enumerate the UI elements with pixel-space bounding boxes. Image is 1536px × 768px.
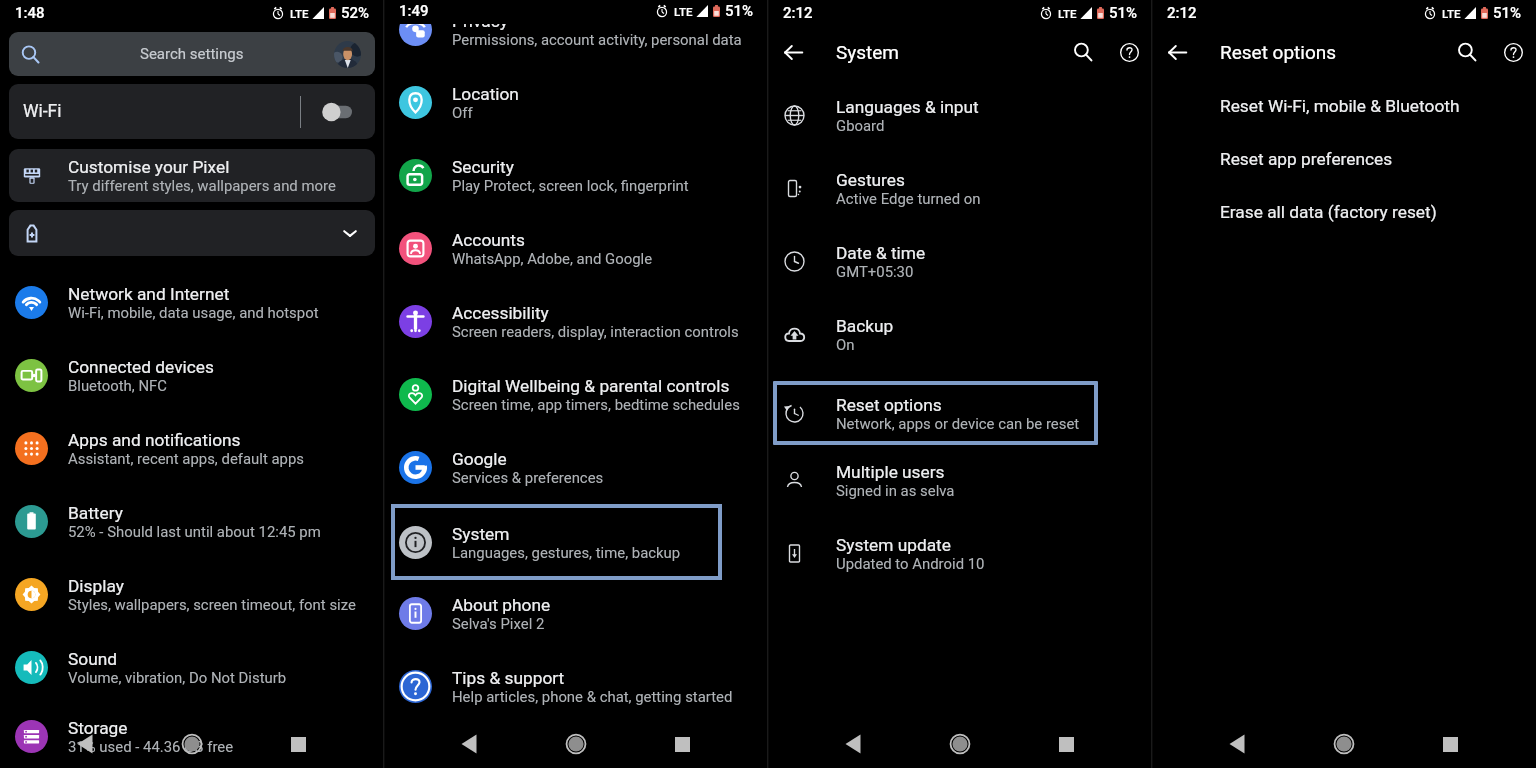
staticText: Bluetooth, NFC xyxy=(68,377,167,394)
staticText: Volume, vibration, Do Not Disturb xyxy=(68,669,287,686)
button[interactable]: Home xyxy=(556,724,596,764)
button[interactable]: Apps and notifications xyxy=(0,412,384,485)
staticText: Digital Wellbeing & parental controls xyxy=(452,376,730,396)
button[interactable]: Erase all data (factory reset) xyxy=(1152,185,1536,238)
staticText: About phone xyxy=(452,595,551,615)
button[interactable]: Date & time xyxy=(768,225,1152,298)
staticText: Gboard xyxy=(836,117,885,134)
staticText: Active Edge turned on xyxy=(836,190,981,207)
button[interactable]: Battery xyxy=(0,485,384,558)
staticText: Battery xyxy=(68,503,123,523)
button[interactable]: Home xyxy=(940,724,980,764)
button[interactable]: Digital Wellbeing & parental controls xyxy=(384,358,768,431)
button[interactable]: Back xyxy=(1217,724,1257,764)
button[interactable]: Network and Internet xyxy=(0,266,384,339)
staticText: LTE xyxy=(290,7,309,20)
button[interactable]: Gestures xyxy=(768,152,1152,225)
staticText: Storage xyxy=(68,718,128,738)
button[interactable]: Customise your Pixel xyxy=(9,149,375,202)
button[interactable]: About phone xyxy=(384,577,768,650)
button[interactable]: Recent apps xyxy=(662,724,702,764)
staticText: 31% used - 44.36 GB free xyxy=(68,738,234,755)
button[interactable]: Back xyxy=(65,724,105,764)
button[interactable]: Connected devices xyxy=(0,339,384,412)
button[interactable]: Help xyxy=(1494,33,1532,71)
staticText: Reset app preferences xyxy=(1220,149,1393,169)
staticText: LTE xyxy=(674,5,693,18)
button[interactable]: Accounts xyxy=(384,212,768,285)
button[interactable]: Recent apps xyxy=(1430,724,1470,764)
staticText: Display xyxy=(68,576,124,596)
staticText: LTE xyxy=(1058,7,1077,20)
staticText: Accessibility xyxy=(452,303,549,323)
staticText: Services & preferences xyxy=(452,469,604,486)
button[interactable]: Search xyxy=(1448,33,1486,71)
staticText: 2:12 xyxy=(783,4,813,22)
staticText: On xyxy=(836,336,855,353)
button[interactable]: Reset options xyxy=(773,381,1098,445)
staticText: 51% xyxy=(725,2,754,20)
button[interactable]: Recent apps xyxy=(1046,724,1086,764)
staticText: 52% xyxy=(341,4,370,22)
button[interactable]: Tips & support xyxy=(384,650,768,723)
staticText: Selva's Pixel 2 xyxy=(452,615,545,632)
button[interactable]: System update xyxy=(768,517,1152,590)
button[interactable]: Wi-Fi xyxy=(9,84,375,139)
button[interactable]: Back xyxy=(777,36,809,68)
button[interactable]: Search settings xyxy=(9,32,375,76)
staticText: Backup xyxy=(836,316,894,336)
button[interactable]: Sound xyxy=(0,631,384,704)
staticText: 2:12 xyxy=(1167,4,1197,22)
staticText: Connected devices xyxy=(68,357,214,377)
staticText: Erase all data (factory reset) xyxy=(1220,202,1437,222)
button[interactable]: Home xyxy=(1324,724,1364,764)
button[interactable]: Security xyxy=(384,139,768,212)
staticText: 51% xyxy=(1109,4,1138,22)
button[interactable]: Backup xyxy=(768,298,1152,371)
staticText: 1:49 xyxy=(399,2,429,20)
staticText: LTE xyxy=(1442,7,1461,20)
staticText: Sound xyxy=(68,649,117,669)
button[interactable]: Google xyxy=(384,431,768,504)
button[interactable]: Home xyxy=(172,724,212,764)
staticText: 51% xyxy=(1493,4,1522,22)
button[interactable]: Privacy xyxy=(384,0,768,66)
staticText: Languages, gestures, time, backup xyxy=(452,544,681,561)
button[interactable]: Back xyxy=(833,724,873,764)
button[interactable]: Back xyxy=(1161,36,1193,68)
staticText: Try different styles, wallpapers and mor… xyxy=(68,177,336,194)
staticText: Off xyxy=(452,104,473,121)
staticText: WhatsApp, Adobe, and Google xyxy=(452,250,653,267)
button[interactable]: Search xyxy=(1064,33,1102,71)
staticText: Location xyxy=(452,84,519,104)
staticText: System xyxy=(452,524,510,544)
button[interactable]: Storage xyxy=(0,704,384,768)
staticText: Reset options xyxy=(1220,41,1337,63)
button[interactable]: Back xyxy=(449,724,489,764)
button[interactable]: Recent apps xyxy=(278,724,318,764)
button[interactable] xyxy=(9,210,375,256)
staticText: Search settings xyxy=(140,45,244,63)
staticText: Google xyxy=(452,449,507,469)
staticText: Help articles, phone & chat, getting sta… xyxy=(452,688,733,705)
button[interactable]: Display xyxy=(0,558,384,631)
staticText: Play Protect, screen lock, fingerprint xyxy=(452,177,689,194)
staticText: Reset options xyxy=(836,395,942,415)
button[interactable]: System xyxy=(391,504,722,580)
button[interactable]: Help xyxy=(1110,33,1148,71)
button[interactable]: Location xyxy=(384,66,768,139)
staticText: Languages & input xyxy=(836,97,979,117)
staticText: System xyxy=(836,41,900,63)
staticText: Accounts xyxy=(452,230,525,250)
staticText: Security xyxy=(452,157,514,177)
button[interactable]: Languages & input xyxy=(768,79,1152,152)
staticText: GMT+05:30 xyxy=(836,263,914,280)
button[interactable]: Multiple users xyxy=(768,444,1152,517)
staticText: Permissions, account activity, personal … xyxy=(452,31,742,48)
staticText: Privacy xyxy=(452,11,508,31)
button[interactable]: Reset Wi-Fi, mobile & Bluetooth xyxy=(1152,79,1536,132)
staticText: Date & time xyxy=(836,243,926,263)
button[interactable]: Accessibility xyxy=(384,285,768,358)
staticText: Tips & support xyxy=(452,668,565,688)
button[interactable]: Reset app preferences xyxy=(1152,132,1536,185)
